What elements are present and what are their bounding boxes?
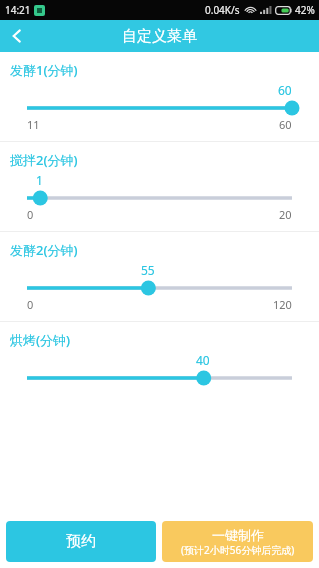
staticText: 搅拌2(分钟) — [10, 151, 78, 169]
staticText: 发酵2(分钟) — [10, 241, 78, 259]
staticText: 0 — [27, 207, 34, 222]
staticText: 60 — [278, 82, 292, 98]
staticText: 55 — [141, 262, 155, 278]
button[interactable] — [0, 99, 319, 117]
staticText: (预计2小时56分钟后完成) — [181, 543, 295, 557]
staticText: 60 — [279, 117, 292, 132]
button[interactable] — [0, 279, 319, 297]
staticText: 发酵1(分钟) — [10, 61, 78, 79]
staticText: 烘烤(分钟) — [10, 331, 71, 349]
staticText: 1 — [36, 172, 43, 188]
staticText: 预约 — [66, 532, 96, 551]
staticText: 14:21 — [5, 3, 31, 17]
button[interactable]: 预约 — [6, 521, 156, 562]
button[interactable] — [0, 189, 319, 207]
button[interactable]: Back — [0, 20, 34, 52]
staticText: 0 — [27, 297, 34, 312]
staticText: 20 — [279, 207, 292, 222]
staticText: 0.04K/s — [205, 3, 240, 17]
staticText: 11 — [27, 117, 40, 132]
staticText: 自定义菜单 — [122, 27, 197, 46]
button[interactable] — [0, 369, 319, 387]
staticText: 一键制作 — [212, 527, 264, 543]
staticText: 120 — [273, 297, 292, 312]
button[interactable]: 一键制作 — [162, 521, 313, 562]
staticText: 42% — [295, 3, 315, 17]
staticText: 40 — [196, 352, 210, 368]
